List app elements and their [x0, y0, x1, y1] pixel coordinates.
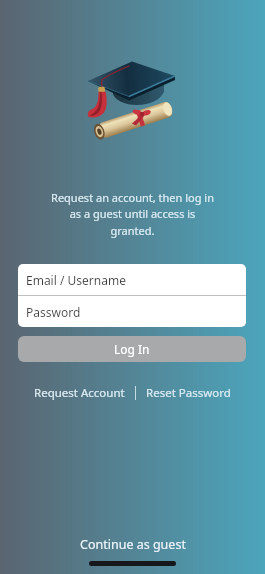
button[interactable]: Request Account	[34, 385, 125, 401]
staticText: Request an account, then log in as a gue…	[0, 190, 265, 238]
staticText: Email / Username	[26, 272, 126, 288]
button[interactable]: Continue as guest	[80, 536, 186, 553]
button[interactable]: Email / Username	[18, 264, 246, 295]
staticText: Continue as guest	[80, 536, 186, 553]
staticText: Reset Password	[146, 385, 231, 401]
button[interactable]: Log In	[18, 336, 246, 362]
staticText: Password	[26, 304, 81, 320]
button[interactable]: Reset Password	[146, 385, 231, 401]
staticText: Log In	[114, 341, 150, 357]
staticText: Request Account	[34, 385, 125, 401]
button[interactable]: Password	[18, 296, 246, 327]
